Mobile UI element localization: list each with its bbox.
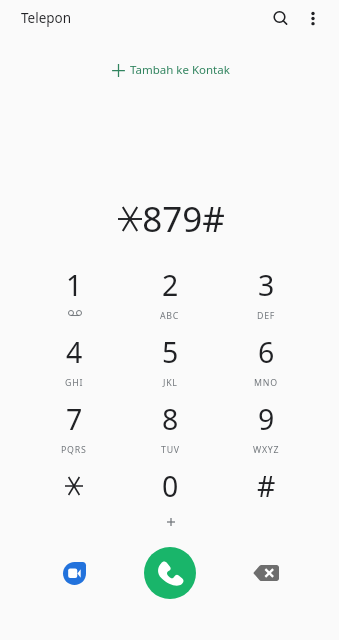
- staticText: 0: [162, 467, 179, 506]
- staticText: 8: [162, 400, 179, 439]
- button[interactable]: Video call: [48, 547, 100, 599]
- staticText: 4: [66, 333, 83, 372]
- button[interactable]: 7: [26, 400, 122, 467]
- button[interactable]: 4: [26, 333, 122, 400]
- staticText: ABC: [160, 310, 180, 322]
- button[interactable]: [26, 467, 122, 534]
- button[interactable]: 9: [218, 400, 314, 467]
- staticText: GHI: [65, 377, 84, 389]
- button[interactable]: 8: [122, 400, 218, 467]
- staticText: PQRS: [61, 444, 87, 456]
- button[interactable]: 1: [26, 266, 122, 333]
- staticText: 6: [258, 333, 275, 372]
- staticText: Tambah ke Kontak: [130, 62, 230, 78]
- button[interactable]: 5: [122, 333, 218, 400]
- button[interactable]: Tambah ke Kontak: [106, 59, 236, 81]
- staticText: WXYZ: [253, 444, 280, 456]
- staticText: 5: [162, 333, 179, 372]
- staticText: JKL: [163, 377, 178, 389]
- staticText: 2: [162, 266, 179, 305]
- button[interactable]: 3: [218, 266, 314, 333]
- staticText: 3: [258, 266, 275, 305]
- staticText: DEF: [257, 310, 276, 322]
- staticText: 9: [258, 400, 275, 439]
- button[interactable]: More options: [295, 0, 331, 36]
- button[interactable]: Backspace: [240, 547, 292, 599]
- staticText: 879#: [142, 195, 225, 243]
- staticText: #: [257, 467, 276, 506]
- staticText: 1: [66, 266, 83, 305]
- staticText: MNO: [254, 377, 278, 389]
- button[interactable]: #: [218, 467, 314, 534]
- button[interactable]: 2: [122, 266, 218, 333]
- staticText: 7: [66, 400, 83, 439]
- button[interactable]: 0: [122, 467, 218, 534]
- staticText: TUV: [161, 444, 180, 456]
- staticText: Telepon: [21, 9, 72, 27]
- button[interactable]: Search: [261, 0, 297, 36]
- button[interactable]: Call: [144, 547, 196, 599]
- button[interactable]: 6: [218, 333, 314, 400]
